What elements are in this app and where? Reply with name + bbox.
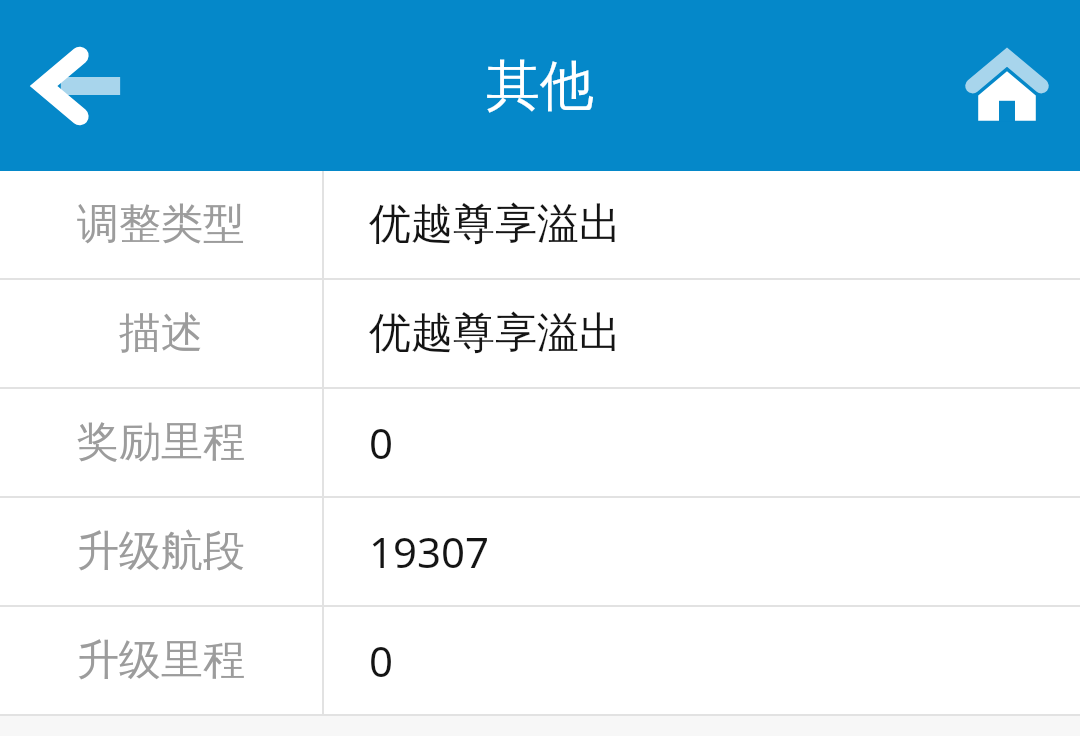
- staticText: 优越尊享溢出: [369, 198, 621, 251]
- staticText: 优越尊享溢出: [369, 307, 621, 360]
- button[interactable]: 升级里程: [0, 607, 1080, 714]
- staticText: 调整类型: [77, 198, 245, 251]
- staticText: 19307: [369, 523, 490, 580]
- staticText: 奖励里程: [77, 416, 245, 469]
- staticText: 升级航段: [77, 525, 245, 578]
- button[interactable]: 奖励里程: [0, 389, 1080, 496]
- staticText: 描述: [119, 307, 203, 360]
- staticText: 0: [369, 632, 394, 689]
- staticText: 升级里程: [77, 634, 245, 687]
- button[interactable]: 描述: [0, 280, 1080, 387]
- staticText: 0: [369, 414, 394, 471]
- button[interactable]: 调整类型: [0, 171, 1080, 278]
- button[interactable]: Home: [952, 31, 1062, 141]
- button[interactable]: 升级航段: [0, 498, 1080, 605]
- staticText: 其他: [486, 52, 594, 120]
- button[interactable]: Back: [18, 26, 138, 146]
